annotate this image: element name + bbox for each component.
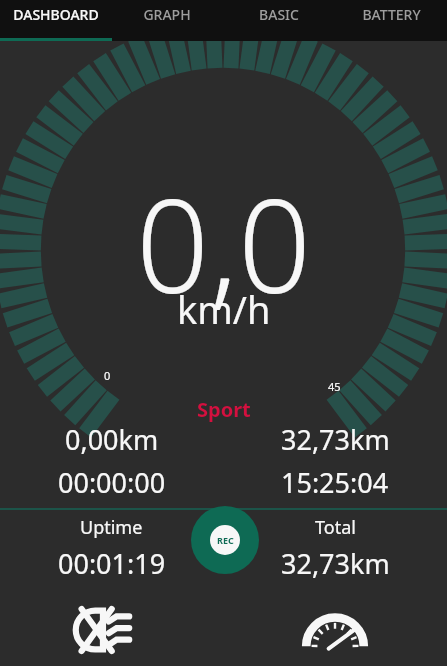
button[interactable]: 32,73km [223, 418, 447, 460]
staticText: 0,00km [65, 421, 159, 458]
staticText: DASHBOARD [13, 5, 99, 24]
staticText: BASIC [259, 5, 299, 24]
button[interactable]: Total [223, 515, 447, 590]
button[interactable]: 00:00:00 [0, 460, 223, 504]
staticText: 00:01:19 [58, 545, 166, 582]
staticText: 0,0 [136, 156, 311, 330]
button[interactable]: Rear fog light [0, 594, 223, 666]
button[interactable]: GRAPH [111, 0, 223, 41]
staticText: REC [217, 534, 234, 546]
staticText: Sport [197, 396, 251, 423]
button[interactable]: 15:25:04 [223, 460, 447, 504]
staticText: 00:00:00 [58, 464, 166, 501]
staticText: Uptime [80, 515, 143, 540]
staticText: km/h [177, 283, 271, 335]
button[interactable]: BATTERY [335, 0, 447, 41]
button[interactable]: DASHBOARD [0, 0, 111, 41]
button[interactable]: Uptime [0, 515, 223, 590]
staticText: BATTERY [362, 5, 421, 24]
staticText: GRAPH [143, 5, 191, 24]
button[interactable]: 0,00km [0, 418, 223, 460]
staticText: 32,73km [281, 545, 390, 582]
staticText: Total [315, 515, 356, 540]
staticText: 45 [328, 379, 341, 394]
button[interactable]: Speedometer [223, 594, 447, 666]
staticText: 15:25:04 [281, 464, 389, 501]
staticText: 32,73km [281, 421, 390, 458]
staticText: 0 [104, 368, 111, 383]
button[interactable]: BASIC [223, 0, 335, 41]
button[interactable]: Record [191, 506, 259, 574]
